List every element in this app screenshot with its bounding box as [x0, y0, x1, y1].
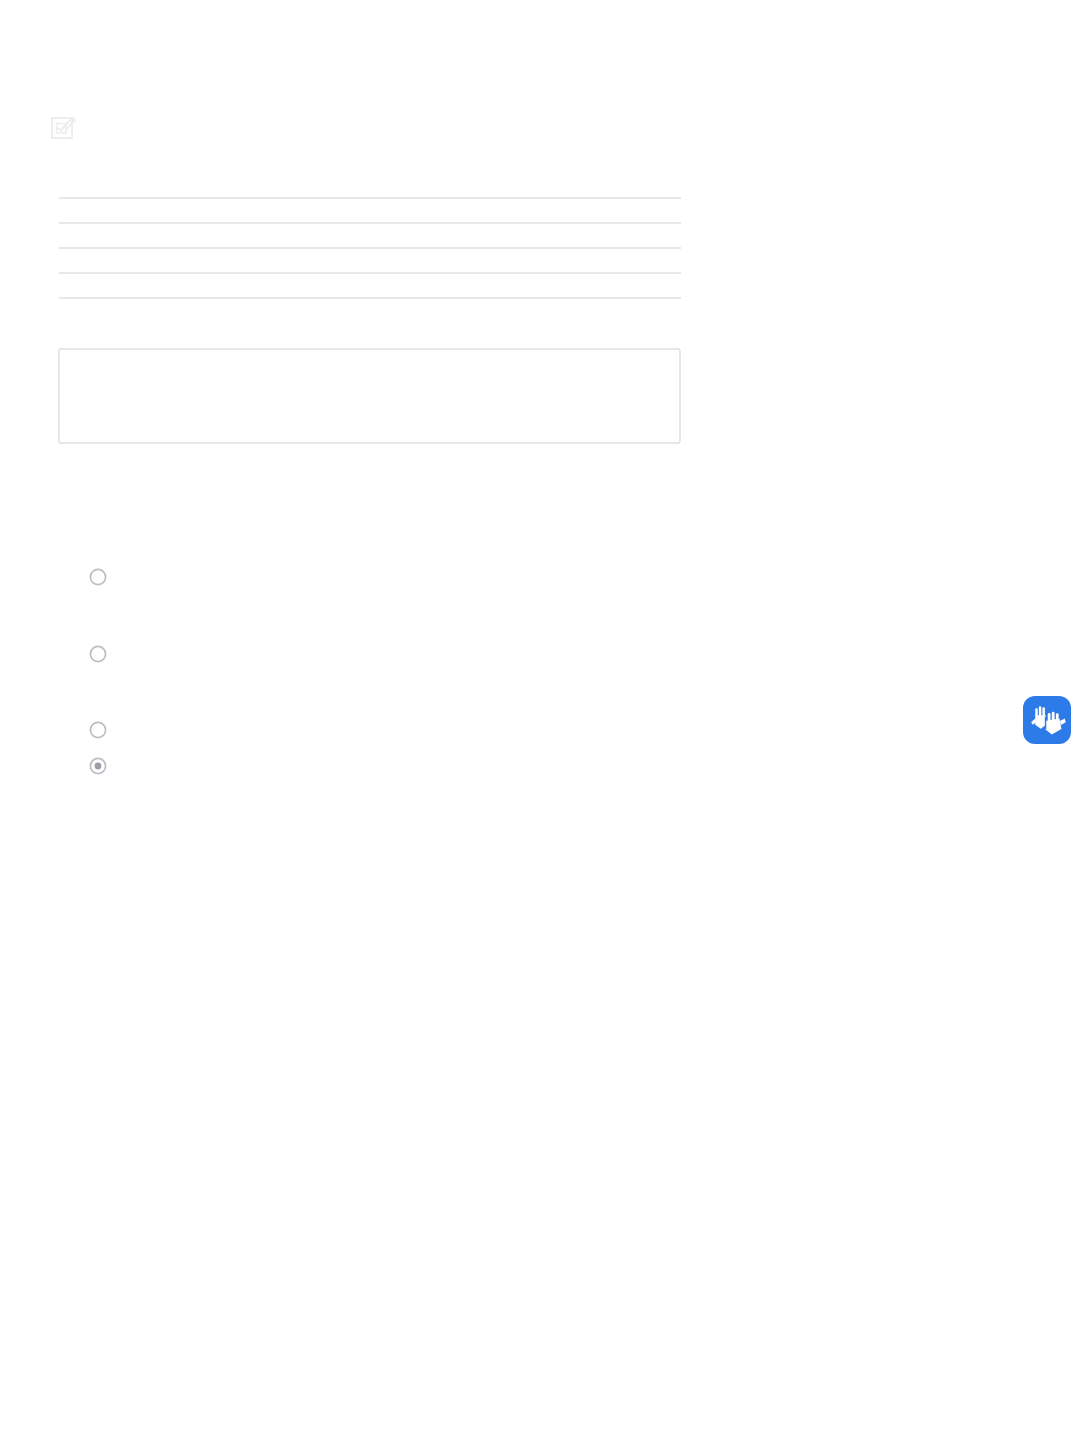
- button[interactable]: Form: [48, 114, 76, 142]
- button[interactable]: Option 3: [59, 713, 681, 747]
- button[interactable]: Option 2: [59, 637, 681, 671]
- button[interactable]: Long answer text: [59, 349, 680, 443]
- button[interactable]: Option 4, selected: [59, 750, 681, 784]
- button[interactable]: Option 1: [59, 560, 681, 594]
- button[interactable]: Sign language accessibility: [1023, 696, 1071, 744]
